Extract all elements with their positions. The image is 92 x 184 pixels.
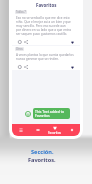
button[interactable]: Tablas 7 [12,9,80,45]
staticText: niño. Que el mejor asi a un bien y que d… [16,20,74,24]
button[interactable]: Favoritos [46,124,63,136]
staticText: Eso no se verdad lo que me dice esto [16,16,70,20]
staticText: Tablas 7 [16,10,26,14]
staticText: nunca generar que se rinden. [16,57,59,61]
button[interactable]: Nav 0 [12,124,29,136]
button[interactable]: Quote [18,65,22,69]
staticText: This Text added to Favoritos [35,109,64,118]
button[interactable]: Otros [12,46,80,70]
button[interactable]: Share [24,65,28,69]
staticText: Favoritos [48,131,61,135]
staticText: Favoritos. [28,156,56,164]
button[interactable]: Favorite [71,66,74,69]
button[interactable]: Share [24,40,28,44]
button[interactable]: Nav 1 [29,124,46,136]
staticText: por dinero en su lado que a que entra [16,28,71,32]
staticText: muy sencillo. Pero eso sucede aun sabes [16,24,74,28]
button[interactable]: Favorite [71,41,74,44]
button[interactable]: Nav 3 [63,124,80,136]
button[interactable]: Quote [18,40,22,44]
staticText: A veces plantas la que cuesta quedarlos … [16,53,74,57]
staticText: Favoritos [36,2,57,8]
staticText: Sección. [31,148,54,156]
staticText: Otros [16,47,23,51]
staticText: ser saquen puso gustarnos castillo. [16,32,68,36]
